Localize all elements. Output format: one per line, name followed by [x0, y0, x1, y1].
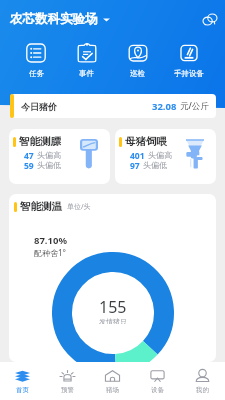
staticText: 47	[24, 150, 34, 159]
button[interactable]: 任务	[11, 43, 61, 78]
staticText: 智能测膘	[19, 135, 61, 148]
staticText: 32.08	[152, 100, 177, 113]
staticText: 元/公斤	[180, 100, 209, 112]
button[interactable]: 事件	[61, 43, 112, 78]
staticText: 手持设备	[174, 69, 204, 78]
button[interactable]: 农芯数科实验场	[10, 11, 111, 27]
staticText: 首页	[16, 386, 29, 394]
button[interactable]: 智能测膘	[9, 129, 110, 184]
staticText: 头偏低	[143, 160, 167, 169]
staticText: 单位/头	[67, 202, 91, 212]
button[interactable]: 我的	[180, 362, 225, 400]
staticText: 发情猪只	[99, 317, 127, 324]
staticText: 任务	[29, 69, 44, 78]
staticText: 母猪饲喂	[125, 135, 167, 148]
button[interactable]: Messages	[199, 8, 221, 30]
button[interactable]: 预警	[45, 362, 90, 400]
staticText: 头偏低	[37, 160, 61, 169]
button[interactable]: 母猪饲喂	[115, 129, 216, 184]
staticText: 事件	[79, 69, 94, 78]
staticText: 59	[24, 160, 34, 169]
staticText: 97	[130, 160, 140, 169]
staticText: 巡检	[130, 69, 145, 78]
button[interactable]: 手持设备	[163, 43, 214, 78]
staticText: 155	[99, 296, 127, 314]
button[interactable]: 巡检	[112, 43, 163, 78]
staticText: 我的	[196, 386, 209, 394]
staticText: 配种舍1°	[34, 247, 66, 258]
staticText: 401	[130, 150, 145, 159]
staticText: 头偏高	[37, 150, 61, 159]
staticText: 设备	[151, 386, 164, 394]
staticText: 智能测温	[20, 200, 62, 213]
button[interactable]: 首页	[0, 362, 45, 400]
staticText: 农芯数科实验场	[10, 11, 98, 27]
staticText: 头偏高	[148, 150, 172, 159]
staticText: 今日猪价	[21, 101, 57, 112]
staticText: 预警	[61, 386, 74, 394]
button[interactable]: 设备	[135, 362, 180, 400]
button[interactable]: 猪场	[90, 362, 135, 400]
staticText: 87.10%	[34, 234, 67, 247]
button[interactable]	[10, 94, 216, 118]
staticText: 猪场	[106, 386, 119, 394]
